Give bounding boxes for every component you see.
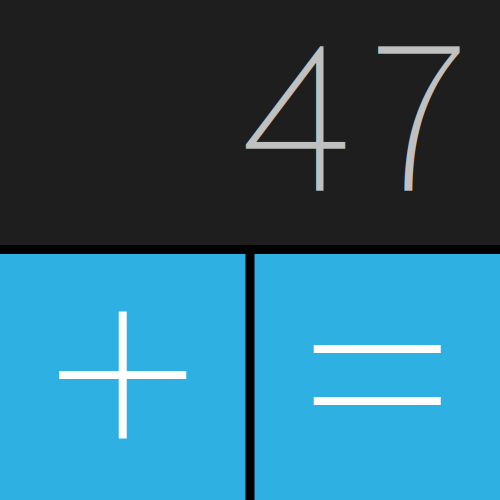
staticText: 47 xyxy=(237,9,470,269)
button[interactable]: Add xyxy=(0,254,245,500)
button[interactable]: Equals xyxy=(254,254,500,500)
